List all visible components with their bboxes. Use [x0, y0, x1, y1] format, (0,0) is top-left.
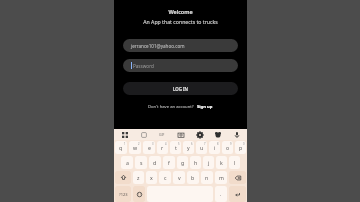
staticText: p	[239, 144, 243, 151]
staticText: Sign up	[197, 104, 213, 110]
button[interactable]: e	[143, 141, 155, 154]
button[interactable]: g	[177, 156, 188, 169]
button[interactable]: o	[222, 141, 233, 154]
button[interactable]: s	[135, 156, 147, 169]
staticText: 3	[152, 142, 154, 146]
staticText: Password	[133, 63, 154, 69]
button[interactable]: p	[235, 141, 246, 154]
button[interactable]: i	[209, 141, 220, 154]
button[interactable]: y	[183, 141, 194, 154]
staticText: .	[220, 191, 222, 198]
staticText: s	[140, 159, 143, 166]
staticText: r	[161, 144, 164, 151]
staticText: i	[214, 144, 216, 151]
staticText: 5	[178, 142, 180, 146]
button[interactable]: l	[229, 156, 240, 169]
button[interactable]: Don't have an account?	[148, 104, 213, 110]
staticText: x	[150, 174, 153, 181]
staticText: An App that connects to trucks	[143, 18, 218, 25]
staticText: 8	[217, 142, 219, 146]
staticText: j	[208, 159, 210, 166]
staticText: k	[220, 159, 223, 166]
button[interactable]: d	[149, 156, 161, 169]
staticText: h	[194, 159, 198, 166]
staticText: GIF	[159, 132, 165, 137]
staticText: LOG IN	[173, 86, 188, 92]
button[interactable]: jerrance101@yahoo.com	[123, 39, 238, 52]
staticText: o	[226, 144, 230, 151]
button[interactable]: GIF	[157, 130, 166, 139]
staticText: 0	[243, 142, 245, 146]
staticText: t	[175, 144, 177, 151]
button[interactable]: Settings	[195, 130, 204, 139]
button[interactable]: Sticker	[213, 130, 222, 139]
button[interactable]: j	[203, 156, 214, 169]
staticText: z	[137, 174, 140, 181]
staticText: Don't have an account?	[148, 104, 194, 110]
button[interactable]: m	[215, 171, 227, 184]
staticText: n	[205, 174, 209, 181]
staticText: y	[187, 144, 190, 151]
staticText: 6	[191, 142, 193, 146]
staticText: d	[153, 159, 157, 166]
staticText: f	[168, 159, 170, 166]
button[interactable]: Camera translate	[176, 130, 185, 139]
staticText: Welcome	[168, 8, 193, 15]
button[interactable]: Keyboard switcher	[120, 130, 129, 139]
staticText: 4	[165, 142, 167, 146]
button[interactable]: k	[216, 156, 227, 169]
staticText: jerrance101@yahoo.com	[131, 43, 185, 49]
button[interactable]: w	[129, 141, 141, 154]
button[interactable]: t	[170, 141, 181, 154]
button[interactable]: Password	[123, 59, 238, 72]
staticText: q	[119, 144, 123, 151]
button[interactable]: x	[146, 171, 157, 184]
button[interactable]: Symbols	[115, 186, 131, 202]
staticText: 9	[230, 142, 232, 146]
staticText: 2	[138, 142, 140, 146]
button[interactable]: Emoji	[133, 186, 145, 202]
button[interactable]: b	[187, 171, 199, 184]
button[interactable]: Clipboard	[139, 130, 148, 139]
button[interactable]: a	[121, 156, 133, 169]
button[interactable]: .	[215, 186, 227, 202]
button[interactable]: r	[157, 141, 168, 154]
staticText: a	[126, 159, 129, 166]
button[interactable]: Backspace	[229, 171, 246, 184]
staticText: v	[178, 174, 181, 181]
button[interactable]: Shift	[115, 171, 131, 184]
staticText: g	[181, 159, 185, 166]
staticText: 1	[124, 142, 126, 146]
button[interactable]: q	[115, 141, 127, 154]
staticText: e	[148, 144, 151, 151]
button[interactable]: u	[196, 141, 207, 154]
staticText: m	[219, 174, 224, 181]
button[interactable]: c	[159, 171, 171, 184]
button[interactable]: Enter	[229, 186, 246, 202]
staticText: 7	[204, 142, 206, 146]
staticText: ?123	[119, 192, 128, 197]
button[interactable]: f	[163, 156, 175, 169]
button[interactable]: z	[133, 171, 144, 184]
button[interactable]: v	[173, 171, 185, 184]
button[interactable]: h	[190, 156, 201, 169]
button[interactable]: Voice input	[232, 130, 241, 139]
staticText: b	[191, 174, 195, 181]
button[interactable]: n	[201, 171, 213, 184]
staticText: w	[133, 144, 138, 151]
staticText: l	[234, 159, 236, 166]
button[interactable]: LOG IN	[123, 82, 238, 95]
staticText: u	[200, 144, 204, 151]
staticText: c	[164, 174, 167, 181]
